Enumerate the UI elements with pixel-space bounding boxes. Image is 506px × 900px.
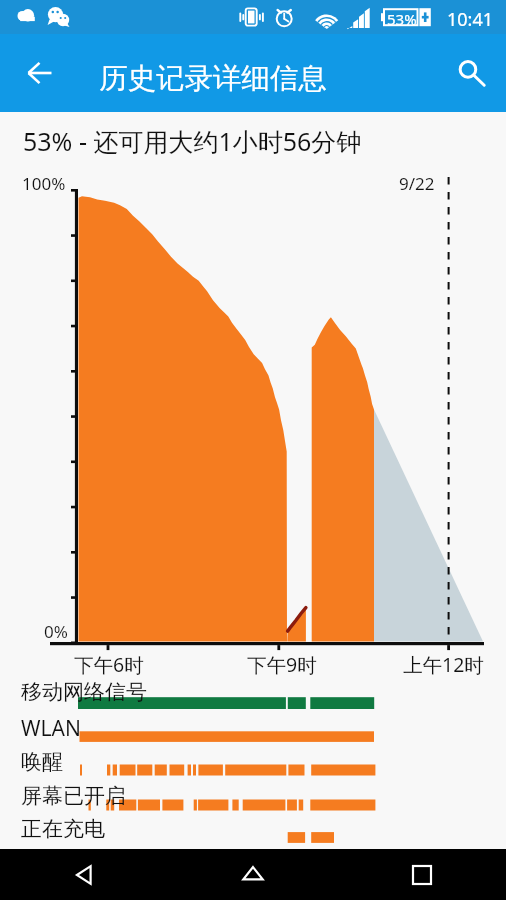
staticText: 正在充电 — [21, 816, 105, 842]
staticText: 屏幕已开启 — [21, 783, 126, 809]
staticText: WLAN — [21, 714, 81, 743]
staticText: 历史记录详细信息 — [99, 61, 327, 97]
staticText: 下午6时 — [74, 651, 144, 678]
staticText: 100% — [22, 172, 66, 195]
staticText: 9/22 — [399, 172, 435, 195]
staticText: 0% — [44, 620, 68, 643]
staticText: 上午12时 — [403, 651, 484, 678]
button[interactable]: Back — [0, 849, 168, 900]
button[interactable]: Recent apps — [337, 849, 506, 900]
staticText: 移动网络信号 — [21, 679, 147, 705]
staticText: 10:41 — [447, 7, 494, 32]
staticText: 53% - 还可用大约1小时56分钟 — [23, 124, 362, 158]
staticText: 唤醒 — [21, 749, 63, 775]
staticText: 下午9时 — [247, 651, 317, 678]
button[interactable]: Search — [448, 49, 496, 97]
staticText: 53% — [387, 9, 417, 29]
button[interactable]: Back — [15, 49, 63, 97]
button[interactable]: Home — [168, 849, 337, 900]
